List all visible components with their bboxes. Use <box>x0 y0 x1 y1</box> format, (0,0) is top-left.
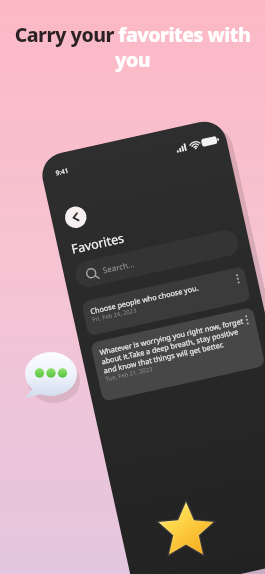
button[interactable]: Favorites app preview <box>0 0 265 574</box>
